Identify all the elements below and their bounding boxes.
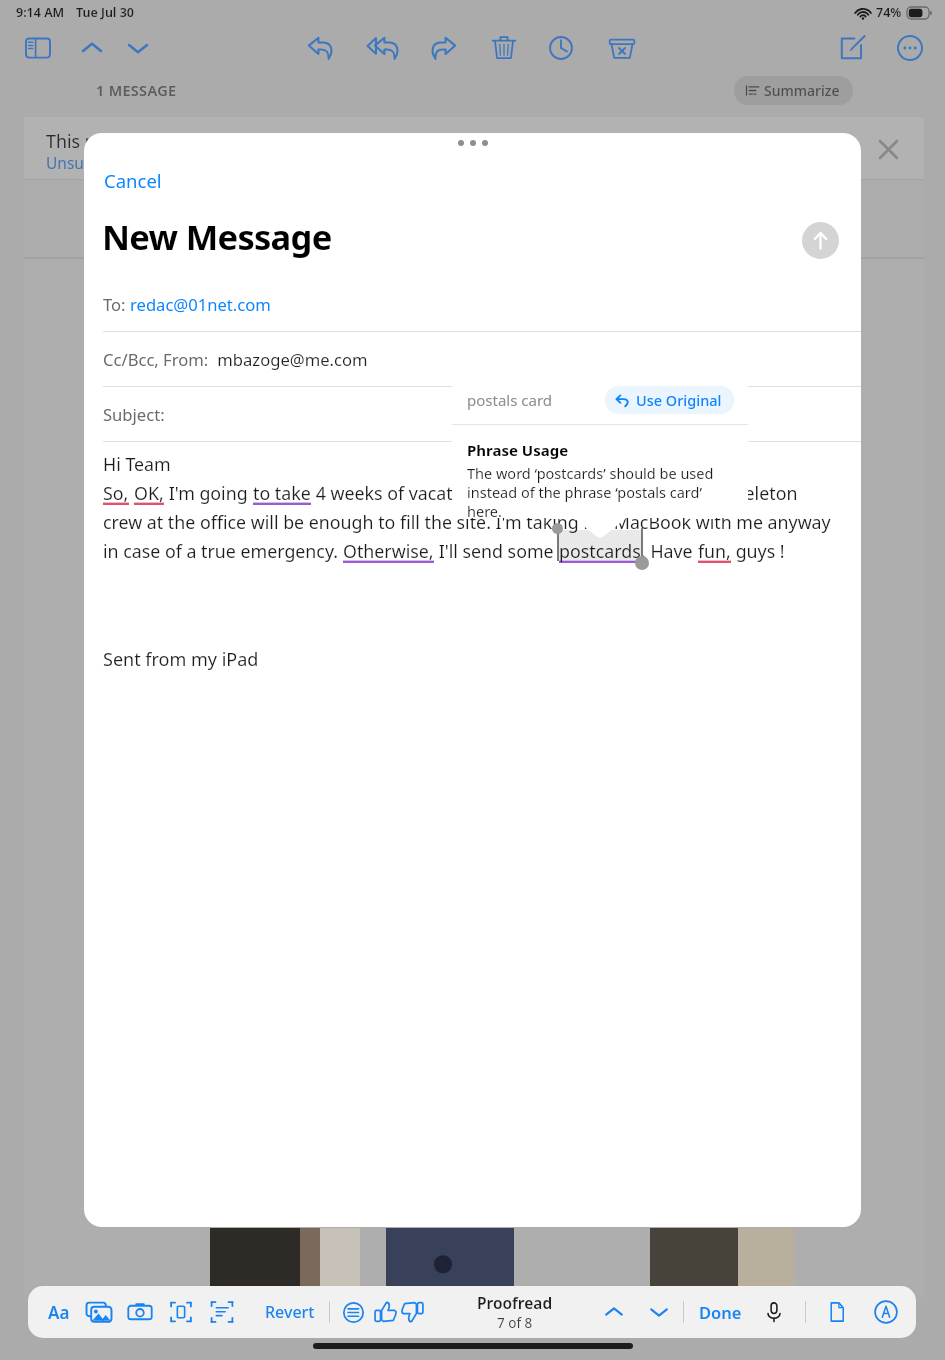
button[interactable]: Cancel <box>102 165 164 196</box>
staticText: Cc/Bcc, From: <box>103 348 213 371</box>
staticText: The word ‘postcards’ should be used inst… <box>467 463 714 518</box>
button[interactable]: Summarize <box>734 76 853 105</box>
staticText: postcards <box>559 539 641 563</box>
button[interactable]: Good suggestion <box>373 1299 399 1325</box>
button[interactable]: Close banner <box>876 137 901 162</box>
staticText: Otherwise, <box>343 539 434 563</box>
staticText: Sent from my iPad <box>103 647 259 672</box>
staticText: fun, <box>698 539 731 563</box>
staticText: This m <box>46 129 102 153</box>
staticText: 4 weeks of vacation in August. I really … <box>311 481 708 505</box>
staticText: Aa <box>48 1301 70 1324</box>
staticText: I'll send some <box>434 539 559 563</box>
button[interactable]: Cc/Bcc, From: <box>84 332 861 387</box>
staticText: Tue Jul 30 <box>76 4 134 21</box>
button[interactable]: To: <box>84 277 861 332</box>
staticText: 9:14 AM <box>16 4 65 21</box>
staticText: . Have <box>641 539 698 563</box>
button[interactable]: Dictate <box>762 1300 786 1324</box>
button[interactable]: Done <box>695 1295 746 1329</box>
button[interactable]: Markup <box>873 1299 899 1325</box>
button[interactable]: Bad suggestion <box>399 1299 425 1325</box>
staticText: New Message <box>102 213 332 260</box>
button[interactable]: Sidebar <box>23 33 53 63</box>
button[interactable]: Take photo <box>127 1299 153 1325</box>
button[interactable]: More options <box>895 33 925 63</box>
staticText: Revert <box>265 1301 315 1323</box>
staticText: redac@01net.com <box>130 293 271 316</box>
staticText: Use Original <box>636 390 722 410</box>
staticText: crew at the office will be enough to fil… <box>103 510 831 534</box>
staticText: skeleton <box>708 481 798 505</box>
staticText: 1 MESSAGE <box>96 80 177 100</box>
staticText: To: <box>103 293 130 316</box>
button[interactable]: Reply all <box>367 33 397 63</box>
button[interactable]: Revert <box>261 1295 319 1329</box>
staticText: Subject: <box>103 403 165 426</box>
staticText: in case of a true emergency. <box>103 539 343 563</box>
staticText: So, <box>103 481 129 505</box>
button[interactable]: Insert photo <box>86 1299 112 1325</box>
staticText: mbazoge@me.com <box>213 348 368 371</box>
staticText: 74% <box>876 4 902 21</box>
staticText: OK, <box>134 481 164 505</box>
staticText: Done <box>699 1301 742 1323</box>
button[interactable]: Show changes <box>342 1301 365 1324</box>
button[interactable]: Forward <box>430 33 460 63</box>
button[interactable]: Previous message <box>77 33 107 63</box>
button[interactable]: Scan text <box>209 1299 235 1325</box>
button[interactable]: Previous suggestion <box>601 1299 627 1325</box>
button[interactable]: Scan document <box>168 1299 194 1325</box>
staticText: postals card <box>467 390 553 410</box>
staticText: to take <box>253 481 311 505</box>
staticText: Phrase Usage <box>467 440 569 460</box>
staticText: I'm going <box>164 481 253 505</box>
button[interactable]: Compose <box>837 33 867 63</box>
button[interactable]: Remind me <box>546 33 576 63</box>
staticText: 7 of 8 <box>497 1314 533 1332</box>
button[interactable]: Reply <box>304 33 334 63</box>
button[interactable]: Next message <box>123 33 153 63</box>
button[interactable]: Subject: <box>84 387 861 442</box>
button[interactable]: Send <box>802 222 839 259</box>
staticText: Summarize <box>764 81 840 100</box>
staticText: guys ! <box>731 539 785 563</box>
staticText: Unsub <box>46 152 94 173</box>
button[interactable]: Archive <box>607 33 637 63</box>
staticText: Hi Team <box>103 452 171 476</box>
button[interactable]: Aa <box>44 1295 74 1330</box>
button[interactable]: Use Original <box>605 386 734 414</box>
button[interactable]: Attach document <box>825 1300 849 1324</box>
button[interactable]: Next suggestion <box>646 1299 672 1325</box>
button[interactable]: Delete <box>489 33 519 63</box>
staticText: Proofread <box>477 1292 553 1313</box>
